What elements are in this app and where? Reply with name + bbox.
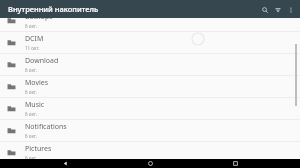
button[interactable]: Pictures [0, 142, 300, 164]
button[interactable]: Backups [0, 10, 300, 32]
staticText: 6 окт. [25, 133, 37, 139]
staticText: Notifications [25, 122, 67, 132]
button[interactable]: More options [285, 4, 296, 15]
button[interactable]: Movies [0, 76, 300, 98]
staticText: Pictures [25, 144, 52, 154]
button[interactable]: Notifications [0, 120, 300, 142]
button[interactable]: DCIM [0, 32, 300, 54]
button[interactable]: Recents [215, 159, 255, 168]
staticText: Movies [25, 78, 49, 88]
button[interactable]: Music [0, 98, 300, 120]
staticText: 6 окт. [25, 155, 37, 161]
button[interactable]: Home [130, 159, 170, 168]
staticText: 6 окт. [25, 67, 37, 73]
staticText: 6 окт. [25, 23, 37, 29]
staticText: 6 окт. [25, 111, 37, 117]
staticText: Music [25, 100, 45, 110]
staticText: Download [25, 56, 59, 66]
staticText: 11 окт. [25, 45, 40, 51]
staticText: Внутренний накопитель [8, 4, 99, 14]
staticText: Backups [25, 12, 53, 22]
button[interactable]: Back [45, 159, 85, 168]
staticText: 6 окт. [25, 89, 37, 95]
staticText: DCIM [25, 34, 44, 44]
button[interactable]: Sort [272, 4, 283, 15]
button[interactable]: Search [259, 4, 270, 15]
button[interactable]: Podcasts [0, 164, 300, 168]
button[interactable]: Download [0, 54, 300, 76]
